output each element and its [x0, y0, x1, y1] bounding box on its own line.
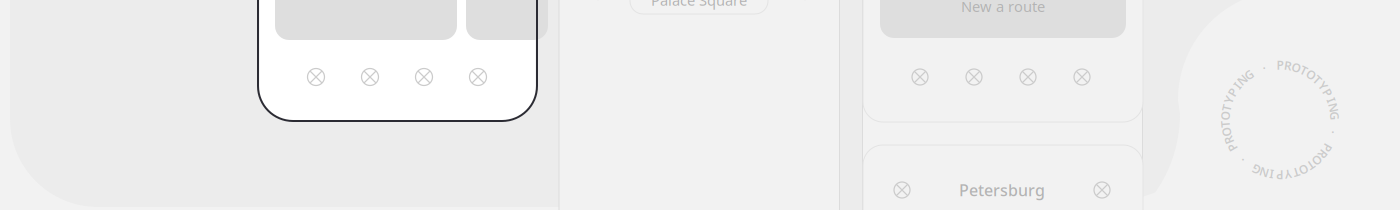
- button[interactable]: Tab: [1074, 69, 1090, 85]
- staticText: P: [1229, 139, 1236, 155]
- button[interactable]: Tab: [1020, 69, 1036, 85]
- staticText: N: [1238, 72, 1248, 88]
- button[interactable]: Back: [894, 182, 910, 198]
- staticText: O: [1222, 124, 1231, 140]
- button[interactable]: Tab: [912, 69, 928, 85]
- button[interactable]: More: [1094, 182, 1110, 198]
- staticText: P: [1229, 84, 1236, 100]
- staticText: T: [1223, 100, 1230, 116]
- staticText: G: [1252, 162, 1261, 177]
- staticText: Y: [1225, 92, 1232, 108]
- staticText: P: [1324, 139, 1331, 155]
- staticText: T: [1222, 116, 1229, 132]
- staticText: T: [1307, 157, 1314, 173]
- staticText: G: [1244, 67, 1253, 82]
- staticText: N: [1329, 100, 1339, 116]
- staticText: R: [1319, 146, 1327, 162]
- staticText: [1235, 146, 1238, 162]
- staticText: Y: [1285, 166, 1292, 182]
- staticText: I: [1329, 92, 1333, 108]
- staticText: Palace Square: [651, 0, 747, 10]
- staticText: O: [1292, 59, 1301, 75]
- staticText: Petersburg: [959, 179, 1045, 201]
- staticText: T: [1314, 72, 1321, 88]
- staticText: T: [1293, 165, 1300, 180]
- staticText: I: [1270, 166, 1274, 182]
- button[interactable]: Palace Square: [630, 0, 768, 14]
- staticText: P: [1276, 57, 1283, 73]
- staticText: P: [1324, 84, 1331, 100]
- staticText: New a route: [961, 0, 1045, 16]
- button[interactable]: Tab: [469, 68, 486, 85]
- staticText: R: [1284, 58, 1292, 73]
- staticText: P: [1276, 167, 1283, 183]
- button[interactable]: Tab: [966, 69, 982, 85]
- staticText: ·: [1332, 124, 1335, 140]
- staticText: G: [1330, 108, 1339, 124]
- staticText: [1330, 132, 1333, 148]
- staticText: ·: [1262, 59, 1265, 75]
- staticText: [1333, 116, 1336, 132]
- staticText: O: [1221, 108, 1230, 124]
- button[interactable]: New a route: [880, 0, 1126, 38]
- staticText: O: [1313, 152, 1322, 168]
- staticText: R: [1225, 132, 1233, 148]
- button[interactable]: Tab: [307, 68, 324, 85]
- staticText: Y: [1319, 78, 1326, 94]
- staticText: ·: [1241, 152, 1244, 168]
- staticText: I: [1235, 78, 1239, 94]
- staticText: O: [1299, 162, 1308, 177]
- staticText: O: [1306, 67, 1315, 82]
- staticText: T: [1300, 62, 1307, 78]
- button[interactable]: Tab: [361, 68, 378, 85]
- button[interactable]: Tab: [415, 68, 432, 85]
- staticText: N: [1259, 165, 1269, 180]
